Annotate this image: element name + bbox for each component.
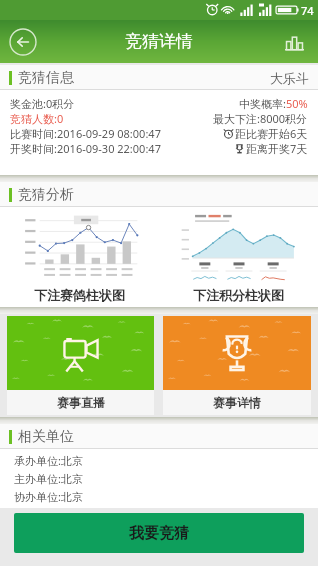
- staticText: 2016-09-29 08:00:47: [57, 126, 161, 141]
- button[interactable]: 我要竞猜: [14, 513, 304, 553]
- staticText: 赛事直播: [57, 395, 105, 410]
- button[interactable]: Statistics: [280, 28, 308, 56]
- staticText: 0: [57, 111, 64, 126]
- staticText: 50%: [286, 96, 308, 111]
- staticText: 下注赛鸽柱状图: [34, 287, 125, 303]
- staticText: 协办单位:北京: [14, 489, 83, 504]
- staticText: 距离开奖7天: [246, 141, 308, 156]
- staticText: 主办单位:北京: [14, 471, 83, 486]
- button[interactable]: Back: [8, 27, 38, 57]
- staticText: 开奖时间:: [10, 141, 57, 156]
- staticText: 相关单位: [18, 428, 74, 446]
- staticText: 我要竞猜: [129, 524, 189, 543]
- button[interactable]: 赛事直播: [7, 316, 154, 415]
- staticText: 竞猜信息: [18, 69, 74, 87]
- staticText: 最大下注:8000积分: [213, 111, 308, 126]
- staticText: 2016-09-30 22:00:47: [57, 141, 161, 156]
- staticText: 74: [301, 3, 314, 18]
- staticText: 0积分: [46, 96, 75, 111]
- button[interactable]: 赛事详情: [163, 316, 311, 415]
- staticText: 下注积分柱状图: [193, 287, 284, 303]
- staticText: 距比赛开始6天: [235, 126, 308, 141]
- staticText: 奖金池:: [10, 96, 46, 111]
- staticText: 竞猜分析: [18, 186, 74, 204]
- staticText: 赛事详情: [213, 395, 261, 410]
- staticText: 大乐斗: [270, 70, 309, 86]
- staticText: 比赛时间:: [10, 126, 57, 141]
- staticText: 中奖概率:: [239, 96, 286, 111]
- staticText: 竞猜详情: [125, 31, 193, 52]
- staticText: 承办单位:北京: [14, 453, 83, 468]
- staticText: 竞猜人数:: [10, 111, 57, 126]
